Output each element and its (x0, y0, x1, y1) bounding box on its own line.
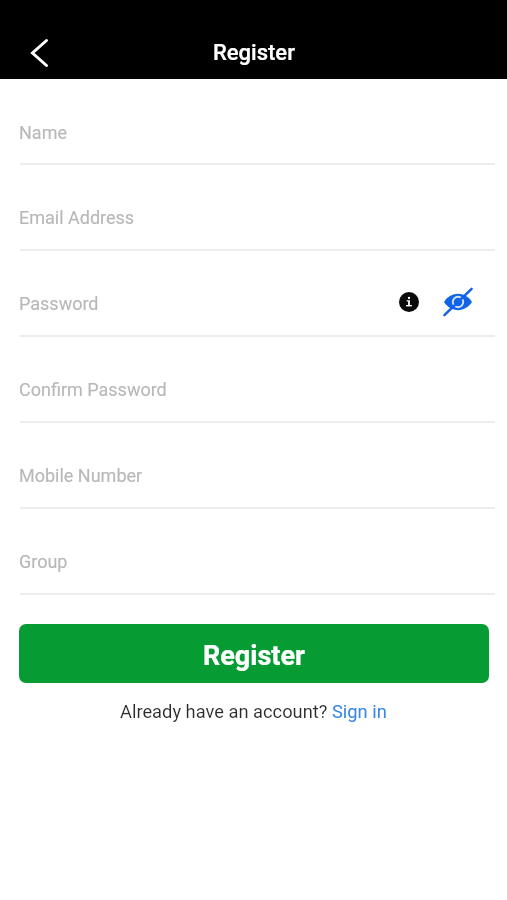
button[interactable]: Register (19, 624, 489, 683)
button[interactable]: Mobile Number (0, 423, 507, 509)
staticText: Confirm Password (19, 379, 167, 400)
staticText: Mobile Number (19, 465, 143, 486)
staticText: Email Address (19, 207, 135, 228)
button[interactable]: Group (0, 509, 507, 595)
button[interactable]: Back (17, 33, 61, 73)
button[interactable]: Name (0, 79, 507, 165)
staticText: Register (213, 40, 295, 66)
staticText: Name (19, 122, 67, 143)
button[interactable]: Show password (441, 285, 475, 319)
staticText: Register (203, 640, 305, 672)
button[interactable]: Confirm Password (0, 337, 507, 423)
button[interactable]: Sign in (332, 701, 387, 722)
staticText: Already have an account? (120, 701, 332, 722)
staticText: Group (19, 551, 68, 572)
staticText: Sign in (332, 701, 387, 722)
button[interactable]: Password requirements (392, 285, 426, 319)
button[interactable]: Password (0, 251, 507, 337)
staticText: Password (19, 293, 99, 314)
button[interactable]: Email Address (0, 165, 507, 251)
